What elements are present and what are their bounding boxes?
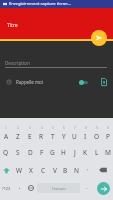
staticText: D bbox=[28, 148, 33, 157]
button[interactable]: 7 bbox=[69, 125, 80, 143]
button[interactable]: 8 bbox=[80, 125, 91, 143]
button[interactable]: Q bbox=[0, 143, 12, 161]
button[interactable]: Change language bbox=[26, 179, 36, 197]
button[interactable]: 1 bbox=[0, 125, 12, 143]
staticText: Français bbox=[52, 186, 66, 191]
staticText: J bbox=[74, 148, 76, 157]
button[interactable]: 6 bbox=[58, 125, 69, 143]
staticText: ' bbox=[87, 167, 89, 174]
staticText: Enregistrement capture écran... bbox=[9, 1, 72, 7]
staticText: T bbox=[51, 132, 55, 141]
staticText: Rappelle moi bbox=[16, 79, 43, 85]
button[interactable]: H bbox=[58, 143, 69, 161]
button[interactable]: ?123 bbox=[0, 179, 13, 197]
button[interactable]: Rappelle moi bbox=[0, 77, 113, 87]
staticText: N bbox=[74, 166, 79, 175]
button[interactable]: ' bbox=[82, 161, 93, 179]
staticText: C bbox=[41, 166, 46, 175]
button[interactable]: L bbox=[91, 143, 102, 161]
button[interactable]: 5 bbox=[47, 125, 58, 143]
staticText: A bbox=[4, 132, 9, 141]
button[interactable]: Français bbox=[37, 183, 80, 193]
staticText: Q bbox=[3, 148, 9, 157]
staticText: 8 bbox=[85, 126, 87, 130]
staticText: E bbox=[28, 132, 32, 141]
button[interactable]: 2 bbox=[12, 125, 24, 143]
button[interactable]: , bbox=[13, 179, 26, 197]
staticText: X bbox=[29, 166, 33, 175]
staticText: S bbox=[16, 148, 20, 157]
staticText: W bbox=[16, 166, 23, 175]
staticText: M bbox=[105, 148, 111, 157]
button[interactable]: 9 bbox=[91, 125, 102, 143]
button[interactable]: 0 bbox=[102, 125, 113, 143]
button[interactable]: Shift bbox=[0, 161, 13, 179]
other: Screen recording bbox=[3, 2, 7, 6]
button[interactable]: . bbox=[80, 179, 93, 197]
button[interactable]: J bbox=[69, 143, 80, 161]
button[interactable]: Enter bbox=[93, 179, 113, 197]
staticText: H bbox=[61, 148, 66, 157]
button[interactable]: Join file bbox=[100, 78, 108, 86]
staticText: U bbox=[72, 132, 77, 141]
staticText: 4 bbox=[41, 126, 43, 130]
staticText: B bbox=[63, 166, 68, 175]
staticText: 0 bbox=[107, 126, 109, 130]
staticText: 6 bbox=[63, 126, 65, 130]
staticText: . bbox=[86, 183, 88, 191]
staticText: P bbox=[106, 132, 110, 141]
button[interactable]: C bbox=[37, 161, 49, 179]
staticText: F bbox=[40, 148, 44, 157]
button[interactable]: F bbox=[36, 143, 47, 161]
button[interactable]: Send bbox=[91, 30, 107, 46]
staticText: Z bbox=[16, 132, 20, 141]
button[interactable]: G bbox=[47, 143, 58, 161]
staticText: O bbox=[94, 132, 100, 141]
staticText: V bbox=[53, 166, 57, 175]
staticText: ?123 bbox=[2, 186, 11, 191]
staticText: 1 bbox=[5, 126, 7, 130]
staticText: 3 bbox=[29, 126, 31, 130]
staticText: , bbox=[19, 183, 21, 191]
button[interactable]: D bbox=[24, 143, 36, 161]
button[interactable]: N bbox=[71, 161, 82, 179]
staticText: K bbox=[83, 148, 88, 157]
button[interactable]: Screen recording bbox=[0, 0, 113, 8]
staticText: Description bbox=[5, 60, 30, 66]
button[interactable]: 4 bbox=[36, 125, 47, 143]
staticText: G bbox=[50, 148, 55, 157]
button[interactable]: X bbox=[25, 161, 37, 179]
button[interactable]: Backspace bbox=[93, 161, 113, 179]
staticText: I bbox=[84, 132, 87, 141]
staticText: 2 bbox=[17, 126, 19, 130]
button[interactable]: V bbox=[49, 161, 60, 179]
staticText: L bbox=[95, 148, 99, 157]
staticText: 7 bbox=[74, 126, 76, 130]
staticText: 9 bbox=[96, 126, 98, 130]
button[interactable]: W bbox=[13, 161, 25, 179]
staticText: Titre bbox=[7, 22, 18, 29]
button[interactable] bbox=[79, 79, 88, 85]
button[interactable]: S bbox=[12, 143, 24, 161]
button[interactable]: 3 bbox=[24, 125, 36, 143]
staticText: 5 bbox=[52, 126, 54, 130]
staticText: Y bbox=[62, 132, 66, 141]
button[interactable]: M bbox=[102, 143, 113, 161]
button[interactable]: B bbox=[60, 161, 71, 179]
button[interactable]: K bbox=[80, 143, 91, 161]
staticText: R bbox=[39, 132, 44, 141]
